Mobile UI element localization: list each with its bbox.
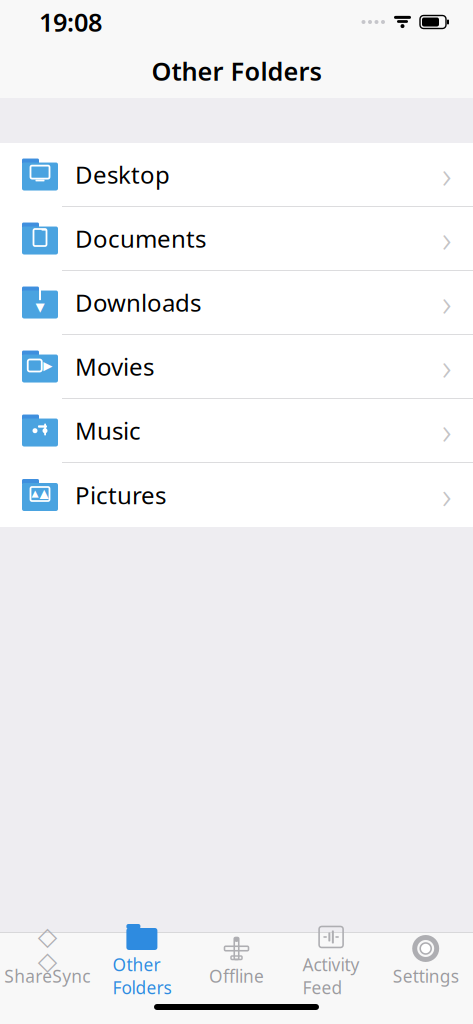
staticText: › [442, 279, 452, 326]
staticText: ◇ [38, 922, 57, 950]
staticText: ▼ [35, 300, 44, 314]
staticText: ▲ [39, 486, 48, 500]
staticText: Other Folders [112, 953, 171, 999]
button[interactable]: ◇ [0, 933, 95, 989]
staticText: › [442, 215, 452, 262]
button[interactable]: ▲ [0, 463, 473, 527]
staticText: › [442, 407, 452, 454]
button[interactable]: Offline [189, 933, 284, 989]
staticText: Pictures [75, 479, 166, 511]
staticText: Other Folders [151, 54, 321, 88]
staticText: Settings [393, 964, 459, 987]
staticText: › [442, 471, 452, 519]
staticText: Music [75, 415, 141, 446]
staticText: › [442, 343, 452, 390]
button[interactable]: Other Folders [95, 933, 189, 989]
staticText: ◇ [38, 946, 57, 975]
staticText: 19:08 [39, 5, 102, 39]
staticText: Offline [209, 964, 264, 987]
staticText: ▲ [31, 488, 38, 499]
staticText: Documents [75, 223, 206, 254]
button[interactable]: Activity Feed [284, 933, 378, 989]
staticText: Movies [75, 351, 154, 382]
button[interactable]: ▶ [0, 335, 473, 399]
button[interactable]: Music [0, 399, 473, 463]
staticText: Downloads [75, 287, 201, 318]
button[interactable]: Desktop [0, 143, 473, 207]
button[interactable]: ▼ [0, 271, 473, 335]
staticText: ShareSync [4, 964, 90, 987]
staticText: ▶ [43, 359, 52, 372]
staticText: Activity Feed [303, 953, 360, 999]
staticText: › [442, 151, 452, 198]
staticText: Desktop [75, 159, 170, 190]
button[interactable]: Settings [378, 933, 473, 989]
button[interactable]: Documents [0, 207, 473, 271]
